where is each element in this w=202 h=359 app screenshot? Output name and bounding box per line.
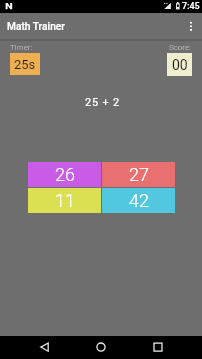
staticText: Math Trainer <box>7 21 65 33</box>
staticText: 11 <box>55 190 75 211</box>
button[interactable]: 42 <box>102 188 175 213</box>
staticText: 00 <box>172 57 188 73</box>
button[interactable]: Recent apps <box>141 336 175 359</box>
button[interactable]: More options <box>178 14 202 40</box>
staticText: 25 + 2 <box>85 96 121 109</box>
staticText: 27 <box>129 164 149 185</box>
staticText: 25s <box>14 57 36 72</box>
button[interactable]: 26 <box>28 162 101 187</box>
button[interactable]: Back <box>28 336 62 359</box>
staticText: Score: <box>169 43 191 52</box>
staticText: 42 <box>129 190 149 211</box>
button[interactable]: 00 <box>167 53 192 76</box>
staticText: 26 <box>55 164 75 185</box>
staticText: Timer: <box>10 43 33 52</box>
button[interactable]: 25s <box>10 53 40 75</box>
button[interactable]: 11 <box>28 188 101 213</box>
staticText: 7:45 <box>182 1 200 12</box>
button[interactable]: 27 <box>102 162 175 187</box>
button[interactable]: Home <box>84 336 118 359</box>
